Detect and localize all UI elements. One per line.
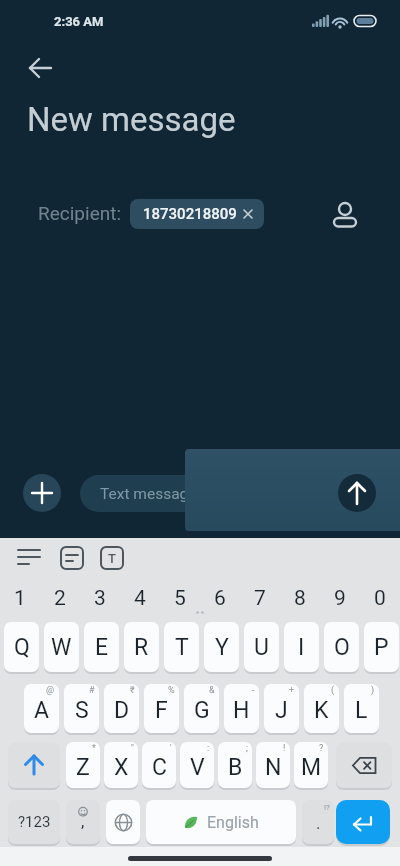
staticText: A <box>34 697 50 724</box>
staticText: 2:36 AM <box>54 14 104 29</box>
button[interactable]: Text message <box>80 475 332 512</box>
staticText: - <box>252 685 255 696</box>
staticText: E <box>95 634 109 661</box>
button[interactable] <box>336 800 390 844</box>
staticText: W <box>51 634 72 661</box>
button[interactable]: K <box>304 684 339 733</box>
button[interactable] <box>23 474 61 512</box>
button[interactable]: O <box>324 622 359 672</box>
button[interactable]: ?123 <box>8 800 60 844</box>
button[interactable]: 1 <box>0 580 40 616</box>
button[interactable]: M <box>294 742 328 788</box>
staticText: 2 <box>54 586 66 611</box>
button[interactable]: 6 <box>200 580 240 616</box>
button[interactable]: 8 <box>280 580 320 616</box>
button[interactable]: D <box>104 684 139 733</box>
button[interactable]: L <box>344 684 379 733</box>
button[interactable]: 0 <box>360 580 400 616</box>
staticText: 6 <box>214 586 226 611</box>
staticText: Q <box>14 634 30 661</box>
button[interactable]: J <box>264 684 299 733</box>
staticText: O <box>334 634 350 661</box>
button[interactable]: W <box>44 622 79 672</box>
button[interactable]: N <box>256 742 290 788</box>
button[interactable]: E <box>84 622 119 672</box>
staticText: New message <box>27 100 236 139</box>
button[interactable]: I <box>284 622 319 672</box>
staticText: Recipient: <box>38 202 122 224</box>
staticText: X <box>114 754 129 781</box>
button[interactable]: 3 <box>80 580 120 616</box>
staticText: V <box>190 754 205 781</box>
staticText: F <box>155 697 168 724</box>
button[interactable]: B <box>218 742 252 788</box>
staticText: 1 <box>14 586 26 611</box>
button[interactable]: T <box>164 622 199 672</box>
button[interactable]: C <box>142 742 176 788</box>
staticText: 3 <box>94 586 106 611</box>
button[interactable]: A <box>24 684 59 733</box>
staticText: S <box>75 697 89 724</box>
staticText: . <box>316 813 321 833</box>
button[interactable]: Z <box>66 742 100 788</box>
staticText: : <box>207 743 210 754</box>
staticText: C <box>152 754 167 781</box>
staticText: + <box>289 685 295 696</box>
staticText: 7 <box>254 586 266 611</box>
button[interactable]: S <box>64 684 99 733</box>
staticText: ? <box>319 743 324 754</box>
staticText: D <box>114 697 130 724</box>
staticText: English <box>207 813 259 832</box>
staticText: @ <box>46 685 55 696</box>
button[interactable]: P <box>364 622 399 672</box>
button[interactable]: English <box>146 800 296 844</box>
staticText: L <box>355 697 368 724</box>
staticText: * <box>92 743 96 754</box>
staticText: M <box>301 754 322 781</box>
button[interactable]: T <box>100 546 124 570</box>
button[interactable] <box>336 742 392 788</box>
button[interactable]: V <box>180 742 214 788</box>
button[interactable]: 18730218809 <box>130 199 264 229</box>
staticText: B <box>228 754 243 781</box>
staticText: I <box>298 634 305 661</box>
staticText: J <box>275 697 288 724</box>
staticText: " <box>131 743 134 754</box>
button[interactable]: G <box>184 684 219 733</box>
button[interactable]: H <box>224 684 259 733</box>
button[interactable]: 4 <box>120 580 160 616</box>
button[interactable]: F <box>144 684 179 733</box>
staticText: R <box>134 634 149 661</box>
button[interactable] <box>338 474 376 512</box>
button[interactable]: Q <box>4 622 39 672</box>
button[interactable] <box>331 198 359 226</box>
staticText: 9 <box>334 586 346 611</box>
button[interactable]: 7 <box>240 580 280 616</box>
staticText: 5 <box>174 586 186 611</box>
button[interactable] <box>106 800 140 844</box>
button[interactable]: . <box>302 800 334 844</box>
button[interactable] <box>26 56 54 80</box>
button[interactable]: , <box>66 800 100 844</box>
button[interactable]: 2 <box>40 580 80 616</box>
staticText: , <box>81 811 85 831</box>
staticText: U <box>254 634 269 661</box>
staticText: % <box>168 685 175 696</box>
button[interactable] <box>60 546 84 570</box>
staticText: & <box>209 685 215 696</box>
staticText: N <box>265 754 282 781</box>
button[interactable] <box>8 742 60 788</box>
staticText: ( <box>331 685 335 696</box>
staticText: Y <box>215 634 229 661</box>
button[interactable]: 5 <box>160 580 200 616</box>
staticText: 18730218809 <box>143 205 237 223</box>
button[interactable]: U <box>244 622 279 672</box>
button[interactable]: Y <box>204 622 239 672</box>
staticText: # <box>89 685 95 696</box>
staticText: P <box>374 634 389 661</box>
button[interactable]: X <box>104 742 138 788</box>
button[interactable]: R <box>124 622 159 672</box>
button[interactable] <box>18 548 42 568</box>
staticText: !? <box>324 803 330 812</box>
button[interactable]: 9 <box>320 580 360 616</box>
